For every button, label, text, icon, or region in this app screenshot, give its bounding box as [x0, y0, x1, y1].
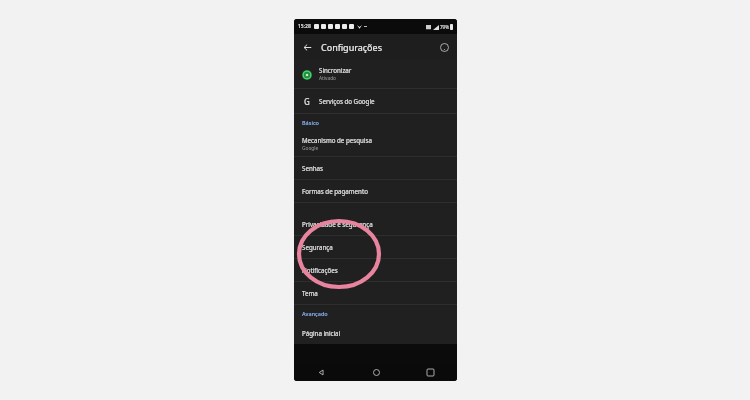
staticText: 15:28: [298, 23, 311, 30]
button[interactable]: Formas de pagamento: [294, 180, 457, 202]
staticText: Tema: [302, 289, 318, 297]
staticText: Serviços do Google: [319, 97, 375, 105]
staticText: Notificações: [302, 266, 338, 274]
staticText: Privacidade e segurança: [302, 220, 373, 228]
button[interactable]: Voltar: [294, 369, 349, 376]
button[interactable]: Tema: [294, 282, 457, 304]
staticText: Avançado: [302, 310, 328, 317]
button[interactable]: Sincronizar: [294, 60, 457, 88]
staticText: Configurações: [321, 41, 382, 53]
staticText: Básico: [302, 119, 319, 126]
staticText: Página inicial: [302, 329, 341, 337]
button[interactable]: G: [294, 89, 457, 113]
staticText: Segurança: [302, 243, 333, 251]
button[interactable]: Página inicial: [294, 322, 457, 344]
staticText: G: [304, 96, 310, 107]
button[interactable]: Recentes: [403, 369, 457, 376]
staticText: Google: [302, 145, 319, 152]
button[interactable]: Segurança: [294, 236, 457, 258]
staticText: Senhas: [302, 164, 323, 172]
staticText: Formas de pagamento: [302, 187, 368, 195]
button[interactable]: Voltar: [299, 39, 315, 55]
button[interactable]: Privacidade e segurança: [294, 213, 457, 235]
button[interactable]: Início: [349, 369, 403, 376]
button[interactable]: Senhas: [294, 157, 457, 179]
button[interactable]: Ajuda: [436, 39, 452, 55]
staticText: 79%: [440, 24, 449, 30]
button[interactable]: Mecanismo de pesquisa: [294, 131, 457, 156]
staticText: Sincronizar: [319, 66, 352, 74]
button[interactable]: Notificações: [294, 259, 457, 281]
staticText: Mecanismo de pesquisa: [302, 136, 372, 144]
staticText: Ativado: [319, 75, 337, 82]
